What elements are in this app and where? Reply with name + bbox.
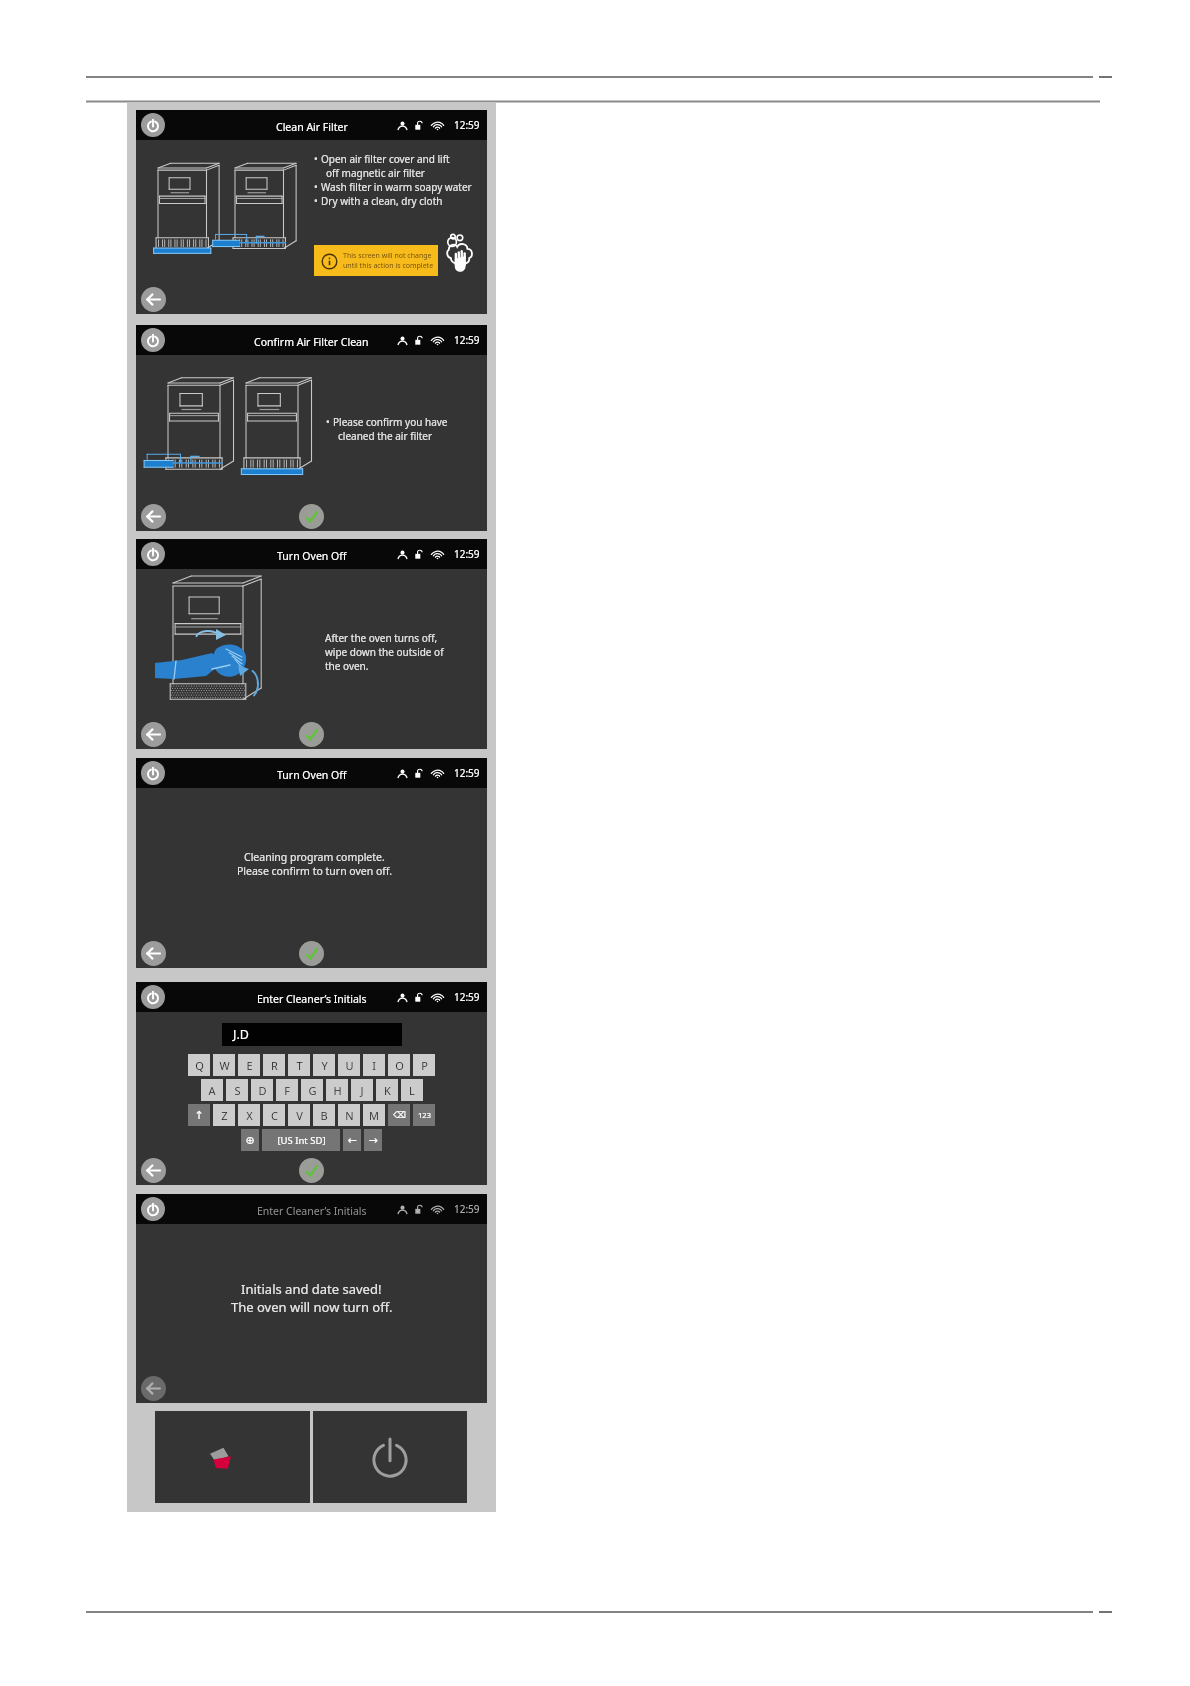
button[interactable]: M [363,1104,385,1126]
button[interactable]: → [364,1129,382,1151]
button[interactable]: F [276,1079,298,1101]
staticText: 12:59 [454,118,480,132]
staticText: Open air filter cover and lift [321,152,450,166]
staticText: 12:59 [454,766,480,780]
staticText: S [234,1083,241,1098]
staticText: Please confirm to turn oven off. [237,864,393,878]
button[interactable]: Power [141,542,165,566]
button[interactable]: Back [141,1376,166,1401]
staticText: ↑ [194,1109,204,1122]
staticText: After the oven turns off, [325,631,438,645]
button[interactable]: Confirm [299,722,324,747]
button[interactable]: U [338,1054,360,1076]
button[interactable]: Power off [313,1411,467,1503]
staticText: Enter Cleaner’s Initials [257,1204,367,1218]
button[interactable]: Power [141,985,165,1009]
staticText: off magnetic air filter [326,166,425,180]
staticText: 12:59 [454,1202,480,1216]
staticText: cleaned the air filter [338,429,433,443]
button[interactable]: Q [188,1054,210,1076]
staticText: R [271,1058,278,1073]
button[interactable]: J.D [222,1023,402,1046]
staticText: X [246,1108,253,1123]
staticText: → [368,1134,378,1147]
staticText: J.D [233,1026,249,1043]
button[interactable]: K [376,1079,398,1101]
button[interactable]: Y [313,1054,335,1076]
button[interactable]: ↑ [188,1104,210,1126]
staticText: F [284,1083,290,1098]
button[interactable]: D [251,1079,273,1101]
button[interactable]: J [351,1079,373,1101]
staticText: Initials and date saved! [241,1280,382,1298]
staticText: A [208,1083,216,1098]
button[interactable]: G [301,1079,323,1101]
button[interactable]: Confirm [299,1158,324,1183]
button[interactable]: E [238,1054,260,1076]
button[interactable]: [US Int SD] [262,1129,340,1151]
button[interactable]: Back [141,722,166,747]
staticText: B [320,1108,328,1123]
staticText: until this action is complete [343,261,434,271]
staticText: C [271,1108,278,1123]
staticText: T [296,1058,303,1073]
button[interactable]: V [288,1104,310,1126]
staticText: E [246,1058,253,1073]
button[interactable]: W [213,1054,235,1076]
staticText: Wash filter in warm soapy water [321,180,472,194]
button[interactable]: N [338,1104,360,1126]
button[interactable]: O [388,1054,410,1076]
button[interactable]: Confirm [299,504,324,529]
button[interactable]: Brand logo [155,1411,310,1503]
staticText: Enter Cleaner’s Initials [257,992,367,1006]
button[interactable]: H [326,1079,348,1101]
staticText: Y [321,1058,328,1073]
button[interactable]: Power [141,113,165,137]
button[interactable]: A [201,1079,223,1101]
staticText: [US Int SD] [277,1134,326,1147]
staticText: • [314,180,318,194]
button[interactable]: Power [141,761,165,785]
button[interactable]: ⌫ [388,1104,410,1126]
staticText: Clean Air Filter [276,120,348,134]
staticText: W [219,1058,230,1073]
staticText: V [296,1108,303,1123]
staticText: Please confirm you have [333,415,448,429]
staticText: J [360,1083,364,1098]
staticText: H [333,1083,342,1098]
staticText: 123 [418,1110,431,1120]
staticText: ⊕ [245,1134,255,1147]
button[interactable]: Confirm [299,941,324,966]
button[interactable]: Back [141,1158,166,1183]
staticText: Q [195,1058,204,1073]
staticText: the oven. [325,659,369,673]
button[interactable]: R [263,1054,285,1076]
button[interactable]: Z [213,1104,235,1126]
button[interactable]: ⊕ [241,1129,259,1151]
button[interactable]: Back [141,504,166,529]
staticText: Turn Oven Off [277,768,347,782]
button[interactable]: Power [141,328,165,352]
button[interactable]: P [413,1054,435,1076]
button[interactable]: ← [343,1129,361,1151]
button[interactable]: X [238,1104,260,1126]
staticText: N [345,1108,354,1123]
button[interactable]: B [313,1104,335,1126]
button[interactable]: This screen will not change [314,245,438,276]
staticText: M [369,1108,379,1123]
button[interactable]: I [363,1054,385,1076]
button[interactable]: T [288,1054,310,1076]
button[interactable]: Back [141,941,166,966]
button[interactable]: C [263,1104,285,1126]
button[interactable]: Back [141,287,166,312]
button[interactable]: L [401,1079,423,1101]
staticText: 12:59 [454,333,480,347]
staticText: U [345,1058,354,1073]
staticText: ← [347,1134,357,1147]
button[interactable]: S [226,1079,248,1101]
staticText: • [314,152,318,166]
button[interactable]: 123 [413,1104,435,1126]
staticText: Turn Oven Off [277,549,347,563]
staticText: The oven will now turn off. [231,1298,393,1316]
button[interactable]: Power [141,1197,165,1221]
